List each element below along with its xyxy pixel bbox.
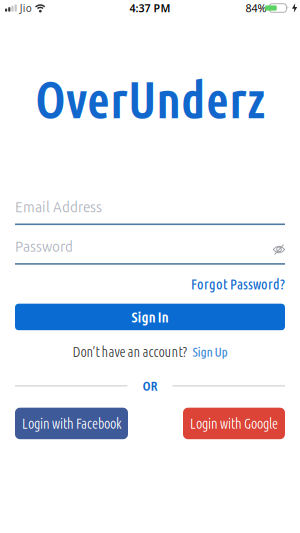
staticText: Jio (20, 1, 32, 15)
staticText: 84% (245, 1, 266, 15)
staticText: Login with Facebook (22, 416, 121, 431)
staticText: 4:37 PM (129, 1, 170, 15)
staticText: Sign In (131, 309, 168, 325)
staticText: OverUnderz (35, 71, 265, 128)
staticText: Email Address (15, 198, 102, 216)
staticText: Forgot Password? (191, 276, 285, 292)
staticText: Login with Google (190, 416, 278, 431)
button[interactable]: Sign In (15, 304, 285, 330)
button[interactable] (273, 244, 285, 255)
staticText: Password (15, 237, 73, 256)
staticText: Don’t have an account? (72, 344, 187, 360)
button[interactable]: Forgot Password? (191, 276, 285, 292)
button[interactable]: Sign Up (192, 344, 227, 359)
button[interactable]: Login with Facebook (15, 408, 128, 439)
staticText: Sign Up (192, 344, 227, 359)
button[interactable]: Login with Google (183, 408, 285, 439)
staticText: OR (142, 378, 157, 393)
